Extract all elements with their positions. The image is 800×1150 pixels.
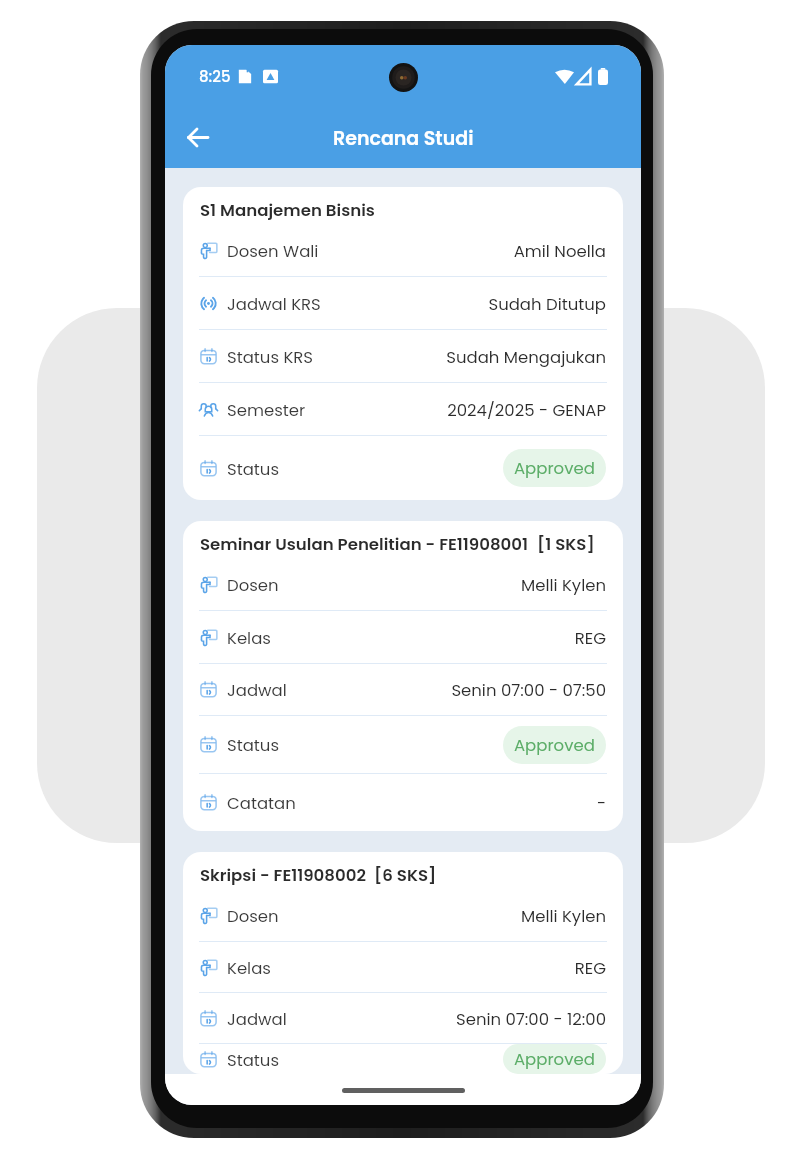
button[interactable]: Dosen Wali — [183, 224, 623, 276]
staticText: [1 SKS] — [537, 533, 595, 556]
button[interactable]: Status — [183, 436, 623, 500]
staticText: REG — [574, 627, 606, 650]
button[interactable]: Status — [183, 716, 623, 773]
button[interactable]: Dosen — [183, 889, 623, 941]
button[interactable]: Jadwal — [183, 993, 623, 1043]
button[interactable]: Back — [175, 114, 221, 160]
staticText: Jadwal — [227, 1008, 287, 1031]
staticText: Senin 07:00 - 12:00 — [455, 1008, 606, 1031]
staticText: Jadwal — [227, 679, 287, 702]
button[interactable]: Kelas — [183, 942, 623, 992]
button[interactable]: Skripsi - FE11908002 — [183, 852, 623, 1074]
staticText: - — [596, 792, 606, 815]
staticText: Skripsi - FE11908002 — [200, 864, 366, 887]
staticText: REG — [574, 957, 606, 980]
staticText: Approved — [514, 1048, 595, 1071]
staticText: Sudah Mengajukan — [446, 346, 606, 369]
staticText: Sudah Ditutup — [488, 293, 606, 316]
staticText: Status KRS — [227, 346, 314, 369]
staticText: Senin 07:00 - 07:50 — [451, 679, 606, 702]
staticText: S1 Manajemen Bisnis — [200, 199, 375, 222]
staticText: Seminar Usulan Penelitian - FE11908001 — [200, 533, 529, 556]
staticText: Semester — [227, 399, 306, 422]
staticText: Dosen — [227, 905, 279, 928]
staticText: 2024/2025 - GENAP — [447, 399, 606, 422]
staticText: Dosen — [227, 574, 279, 597]
staticText: Jadwal KRS — [227, 293, 321, 316]
staticText: [6 SKS] — [374, 864, 437, 887]
button[interactable]: Jadwal KRS — [183, 277, 623, 329]
staticText: Status — [227, 1049, 280, 1072]
staticText: Status — [227, 734, 280, 757]
staticText: Rencana Studi — [333, 125, 474, 152]
staticText: 8:25 — [199, 66, 231, 87]
staticText: Approved — [514, 457, 595, 480]
button[interactable]: Kelas — [183, 611, 623, 663]
button[interactable]: Catatan — [183, 774, 623, 831]
button[interactable]: Jadwal — [183, 664, 623, 715]
button[interactable]: Status — [183, 1044, 623, 1074]
button[interactable]: Seminar Usulan Penelitian - FE11908001 — [183, 521, 623, 831]
button[interactable]: Dosen — [183, 558, 623, 610]
staticText: Dosen Wali — [227, 240, 319, 263]
staticText: Catatan — [227, 792, 296, 815]
staticText: Kelas — [227, 627, 271, 650]
staticText: Kelas — [227, 957, 271, 980]
staticText: Status — [227, 458, 280, 481]
staticText: Melli Kylen — [520, 905, 606, 928]
button[interactable]: Semester — [183, 383, 623, 435]
staticText: Amil Noella — [513, 240, 606, 263]
staticText: Approved — [514, 734, 595, 757]
staticText: Melli Kylen — [520, 574, 606, 597]
button[interactable]: S1 Manajemen Bisnis — [183, 187, 623, 500]
button[interactable]: Status KRS — [183, 330, 623, 382]
